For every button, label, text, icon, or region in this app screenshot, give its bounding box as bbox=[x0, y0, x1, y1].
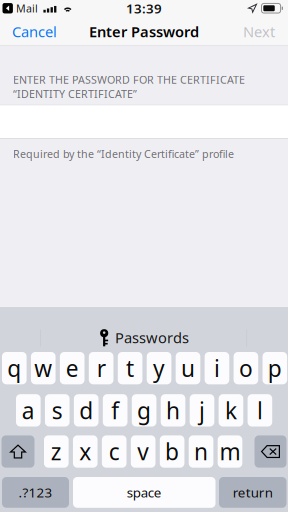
button[interactable]: s bbox=[45, 394, 70, 426]
staticText: Next bbox=[243, 22, 275, 41]
staticText: a bbox=[22, 395, 35, 425]
button[interactable]: x bbox=[73, 435, 98, 468]
button[interactable]: k bbox=[219, 394, 243, 426]
button[interactable]: o bbox=[234, 352, 258, 384]
staticText: “IDENTITY CERTIFICATE” bbox=[13, 87, 137, 101]
button[interactable]: g bbox=[132, 394, 156, 426]
staticText: l bbox=[257, 395, 263, 425]
button[interactable]: y bbox=[147, 352, 171, 384]
button[interactable]: Delete bbox=[254, 435, 286, 468]
button[interactable]: a bbox=[16, 394, 41, 426]
staticText: v bbox=[137, 436, 149, 467]
staticText: n bbox=[194, 436, 208, 467]
staticText: return bbox=[233, 483, 273, 501]
button[interactable]: w bbox=[31, 352, 55, 384]
button[interactable]: space bbox=[73, 477, 215, 508]
button[interactable]: m bbox=[218, 435, 242, 468]
staticText: m bbox=[219, 436, 240, 467]
button[interactable]: i bbox=[205, 352, 229, 384]
staticText: space bbox=[127, 483, 162, 501]
staticText: s bbox=[52, 395, 63, 425]
staticText: z bbox=[51, 436, 62, 467]
button[interactable]: return bbox=[219, 477, 286, 508]
staticText: i bbox=[214, 353, 220, 383]
staticText: d bbox=[79, 395, 93, 425]
button[interactable]: h bbox=[161, 394, 185, 426]
staticText: x bbox=[79, 436, 91, 467]
staticText: .?123 bbox=[18, 483, 52, 501]
staticText: 13:39 bbox=[126, 0, 162, 17]
button[interactable]: f bbox=[103, 394, 127, 426]
staticText: b bbox=[165, 436, 179, 467]
button[interactable]: n bbox=[189, 435, 213, 468]
button[interactable]: .?123 bbox=[2, 477, 69, 508]
button[interactable]: e bbox=[60, 352, 84, 384]
button[interactable]: u bbox=[176, 352, 200, 384]
staticText: Cancel bbox=[12, 22, 57, 41]
button[interactable]: t bbox=[118, 352, 142, 384]
staticText: q bbox=[7, 353, 21, 383]
staticText: Enter Password bbox=[89, 22, 199, 41]
button[interactable]: b bbox=[160, 435, 184, 468]
staticText: p bbox=[268, 353, 282, 383]
staticText: c bbox=[109, 436, 120, 467]
staticText: Passwords bbox=[115, 328, 189, 347]
button[interactable]: r bbox=[89, 352, 113, 384]
staticText: j bbox=[199, 395, 205, 425]
staticText: e bbox=[66, 353, 79, 383]
button[interactable]: Cancel bbox=[0, 18, 67, 45]
button[interactable]: l bbox=[248, 394, 272, 426]
staticText: ENTER THE PASSWORD FOR THE CERTIFICATE bbox=[13, 72, 245, 87]
button[interactable]: c bbox=[102, 435, 126, 468]
button[interactable]: j bbox=[190, 394, 214, 426]
button[interactable]: Next bbox=[233, 18, 288, 45]
button[interactable]: z bbox=[44, 435, 69, 468]
staticText: Required by the “Identity Certificate” p… bbox=[13, 147, 234, 161]
staticText: k bbox=[225, 395, 237, 425]
button[interactable]: q bbox=[2, 352, 27, 384]
staticText: y bbox=[153, 353, 165, 383]
staticText: Mail bbox=[16, 1, 38, 15]
button[interactable]: p bbox=[263, 352, 287, 384]
button[interactable]: d bbox=[74, 394, 98, 426]
staticText: h bbox=[166, 395, 180, 425]
staticText: t bbox=[126, 353, 134, 383]
staticText: w bbox=[34, 353, 52, 383]
staticText: u bbox=[181, 353, 195, 383]
button[interactable]: Passwords bbox=[0, 321, 288, 353]
staticText: f bbox=[111, 395, 119, 425]
staticText: o bbox=[239, 353, 253, 383]
button[interactable]: Shift bbox=[1, 435, 34, 468]
staticText: r bbox=[97, 353, 106, 383]
staticText: g bbox=[137, 395, 151, 425]
button[interactable]: v bbox=[131, 435, 155, 468]
